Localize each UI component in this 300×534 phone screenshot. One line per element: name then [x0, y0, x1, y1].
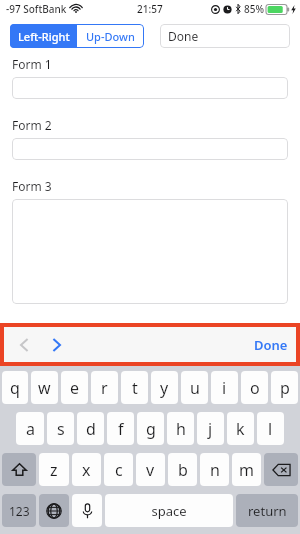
button[interactable]: k	[227, 412, 254, 445]
staticText: 85%	[244, 2, 264, 16]
staticText: c	[115, 459, 123, 481]
staticText: Form 2	[12, 117, 52, 133]
button[interactable]: x	[72, 453, 101, 486]
button[interactable]: Backspace	[264, 453, 298, 486]
button[interactable]: a	[16, 412, 44, 445]
button[interactable]: h	[167, 412, 194, 445]
button[interactable]: r	[91, 371, 118, 404]
staticText: 21:57	[137, 2, 163, 16]
button[interactable]: t	[121, 371, 148, 404]
button[interactable]: n	[200, 453, 229, 486]
button[interactable]	[12, 77, 288, 99]
staticText: Up-Down	[86, 29, 135, 44]
button[interactable]: return	[236, 494, 298, 527]
staticText: Form 1	[12, 56, 52, 72]
button[interactable]: space	[105, 494, 233, 527]
staticText: g	[146, 418, 156, 440]
button[interactable]: p	[271, 371, 298, 404]
staticText: i	[222, 377, 227, 399]
staticText: space	[151, 502, 187, 520]
button[interactable]: Dictation	[72, 494, 102, 527]
staticText: s	[57, 418, 65, 440]
staticText: v	[146, 459, 155, 481]
staticText: d	[86, 418, 96, 440]
staticText: w	[38, 377, 51, 399]
button[interactable]: c	[104, 453, 133, 486]
button[interactable]: q	[2, 371, 28, 404]
staticText: k	[236, 418, 245, 440]
button[interactable]: y	[151, 371, 178, 404]
button[interactable]: Up-Down	[77, 24, 144, 48]
staticText: y	[160, 377, 169, 399]
staticText: e	[70, 377, 80, 399]
staticText: 123	[9, 503, 30, 519]
staticText: Done	[168, 28, 199, 44]
button[interactable]: Next field	[44, 333, 68, 357]
staticText: t	[132, 377, 138, 399]
staticText: l	[268, 418, 273, 440]
staticText: r	[101, 377, 108, 399]
button[interactable]: i	[211, 371, 238, 404]
staticText: o	[250, 377, 260, 399]
button[interactable]: z	[39, 453, 69, 486]
button[interactable]: Shift	[2, 453, 36, 486]
button[interactable]: v	[136, 453, 165, 486]
button[interactable]: s	[47, 412, 74, 445]
button[interactable]: m	[232, 453, 261, 486]
button[interactable]: u	[181, 371, 208, 404]
button[interactable]: 123	[2, 494, 36, 527]
staticText: Form 3	[12, 178, 52, 194]
staticText: Left-Right	[18, 29, 70, 44]
staticText: n	[210, 459, 220, 481]
staticText: m	[239, 459, 254, 481]
button[interactable]: e	[61, 371, 88, 404]
button[interactable]: Done	[160, 24, 290, 48]
staticText: u	[190, 377, 200, 399]
button[interactable]	[12, 199, 288, 304]
staticText: f	[118, 418, 124, 440]
staticText: Done	[254, 336, 288, 354]
staticText: return	[248, 502, 287, 520]
staticText: b	[178, 459, 188, 481]
button[interactable]: b	[168, 453, 197, 486]
staticText: h	[176, 418, 186, 440]
button[interactable]: Done	[254, 336, 288, 354]
staticText: p	[280, 377, 290, 399]
button[interactable]: o	[241, 371, 268, 404]
staticText: q	[10, 377, 20, 399]
button[interactable]: Change keyboard	[39, 494, 69, 527]
button[interactable]: d	[77, 412, 104, 445]
button[interactable]: l	[257, 412, 284, 445]
staticText: j	[208, 418, 213, 440]
button[interactable]: Left-Right	[10, 24, 77, 48]
staticText: -97 SoftBank	[6, 2, 67, 16]
button[interactable]: Previous field	[12, 333, 36, 357]
button[interactable]	[12, 138, 288, 160]
button[interactable]: j	[197, 412, 224, 445]
staticText: a	[26, 418, 35, 440]
button[interactable]: w	[31, 371, 58, 404]
button[interactable]: f	[107, 412, 134, 445]
button[interactable]: g	[137, 412, 164, 445]
staticText: z	[50, 459, 58, 481]
staticText: x	[82, 459, 91, 481]
